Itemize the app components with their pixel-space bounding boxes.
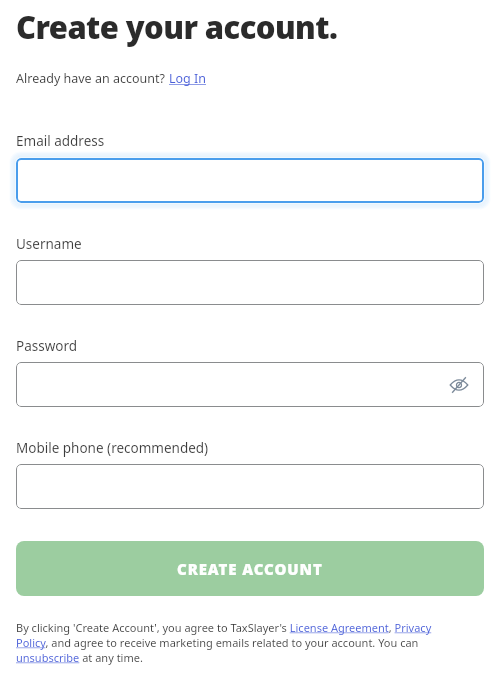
button[interactable] <box>16 158 484 203</box>
button[interactable] <box>16 464 484 509</box>
button[interactable]: Show password <box>16 362 484 407</box>
staticText: Log In <box>169 70 207 87</box>
staticText: By clicking 'Create Account', you agree … <box>16 620 432 635</box>
staticText: Mobile phone (recommended) <box>16 439 209 457</box>
staticText: unsubscribe at any time. <box>16 650 143 665</box>
button[interactable]: CREATE ACCOUNT <box>16 541 484 596</box>
staticText: Policy, and agree to receive marketing e… <box>16 635 419 650</box>
staticText: CREATE ACCOUNT <box>177 559 323 579</box>
staticText: Username <box>16 235 82 253</box>
button[interactable] <box>16 260 484 305</box>
button[interactable]: Show password <box>446 372 472 398</box>
staticText: Already have an account? <box>16 70 169 87</box>
staticText: Password <box>16 337 78 355</box>
staticText: Email address <box>16 132 105 150</box>
staticText: Create your account. <box>16 6 338 48</box>
button[interactable]: Log In <box>169 70 207 87</box>
